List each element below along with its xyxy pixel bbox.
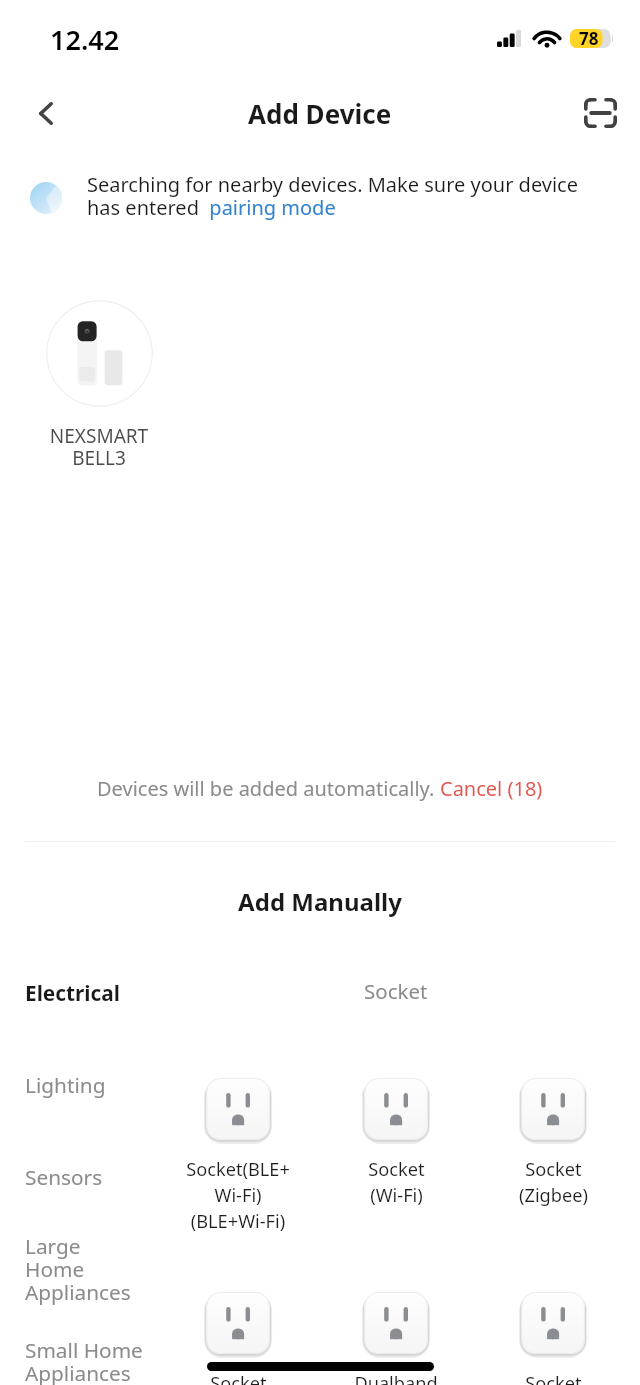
button[interactable]: Socket	[474, 1289, 632, 1385]
staticText: Add Device	[248, 96, 392, 131]
staticText: Socket	[525, 1371, 582, 1385]
button[interactable]: Socket (Zigbee)	[474, 1075, 632, 1207]
staticText: Devices will be added automatically.	[97, 775, 435, 802]
staticText: Socket (Zigbee)	[519, 1157, 588, 1207]
button[interactable]: Small Home Appliances	[0, 1322, 175, 1385]
button[interactable]: Electrical	[0, 965, 175, 1021]
button[interactable]: Back	[16, 80, 76, 146]
staticText: Socket	[364, 977, 428, 1005]
staticText: 12.42	[50, 21, 120, 58]
staticText: Electrical	[25, 979, 120, 1007]
button[interactable]: Dualband	[317, 1289, 475, 1385]
staticText: Dualband	[354, 1371, 438, 1385]
button[interactable]: Socket (Wi-Fi)	[317, 1075, 475, 1207]
staticText: Small Home Appliances	[25, 1336, 143, 1385]
staticText: Add Manually	[0, 885, 640, 918]
button[interactable]: Large Home Appliances	[0, 1218, 175, 1320]
button[interactable]: Socket(BLE+ Wi-Fi) (BLE+Wi-Fi)	[159, 1075, 317, 1233]
button[interactable]: NEXSMART BELL3	[40, 300, 158, 471]
staticText: Cancel (18)	[440, 775, 543, 802]
button[interactable]: Sensors	[0, 1149, 175, 1205]
staticText: Searching for nearby devices. Make sure …	[87, 171, 585, 221]
staticText: Large Home Appliances	[25, 1232, 131, 1306]
staticText: Socket (Wi-Fi)	[368, 1157, 425, 1207]
staticText: NEXSMART BELL3	[40, 423, 158, 471]
staticText: Socket(BLE+ Wi-Fi) (BLE+Wi-Fi)	[186, 1157, 290, 1233]
button[interactable]: Lighting	[0, 1057, 175, 1113]
button[interactable]: Cancel (18)	[440, 775, 543, 802]
staticText: 78	[579, 27, 599, 50]
staticText: Lighting	[25, 1071, 106, 1099]
staticText: Socket	[210, 1371, 267, 1385]
staticText: Sensors	[25, 1163, 103, 1191]
button[interactable]: Socket	[159, 1289, 317, 1385]
button[interactable]: Scan QR code	[572, 80, 628, 146]
